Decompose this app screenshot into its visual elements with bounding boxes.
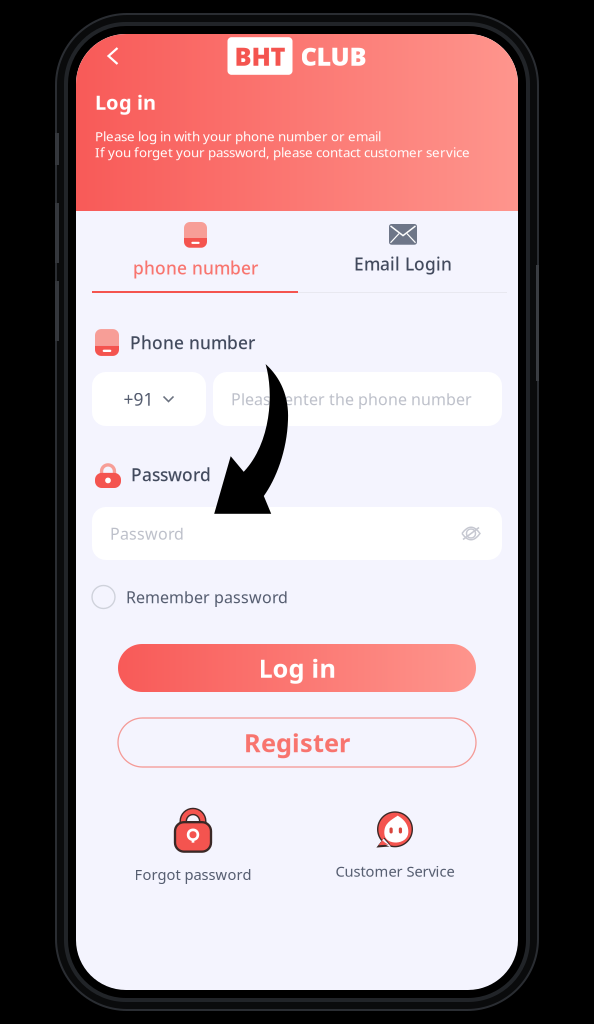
- staticText: Register: [244, 726, 350, 759]
- staticText: Password: [110, 523, 184, 544]
- button[interactable]: Customer Service: [294, 810, 496, 881]
- staticText: Phone number: [130, 331, 255, 354]
- button[interactable]: +91: [92, 372, 206, 426]
- staticText: Forgot password: [134, 865, 251, 884]
- staticText: Please log in with your phone number or …: [95, 127, 381, 145]
- button[interactable]: Forgot password: [92, 807, 294, 884]
- button[interactable]: Email Login: [298, 211, 518, 293]
- button[interactable]: Back: [95, 38, 131, 74]
- staticText: If you forget your password, please cont…: [95, 143, 470, 161]
- staticText: Log in: [95, 89, 156, 115]
- staticText: Remember password: [126, 586, 288, 608]
- staticText: +91: [123, 387, 153, 410]
- staticText: CLUB: [300, 39, 366, 73]
- staticText: Password: [131, 463, 211, 486]
- staticText: Please enter the phone number: [231, 388, 472, 410]
- button[interactable]: Show password: [458, 520, 484, 546]
- button[interactable]: phone number: [76, 211, 298, 293]
- button[interactable]: Register: [118, 718, 476, 767]
- button[interactable]: Log in: [118, 644, 476, 692]
- staticText: Customer Service: [335, 861, 454, 881]
- staticText: Email Login: [354, 252, 452, 275]
- staticText: phone number: [133, 256, 258, 279]
- staticText: Log in: [258, 651, 335, 685]
- button[interactable]: Remember password: [92, 585, 496, 609]
- staticText: BHT: [234, 39, 285, 73]
